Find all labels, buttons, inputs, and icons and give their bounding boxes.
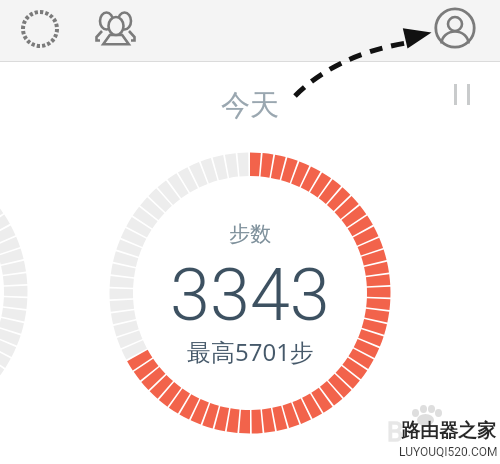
staticText: 步数 [229,221,271,247]
button[interactable] [18,7,62,51]
staticText: 3343 [170,253,330,337]
staticText: B [387,417,404,445]
button[interactable] [442,78,482,118]
staticText: 路由器之家 [401,419,496,443]
button[interactable] [433,6,477,50]
staticText: 最高5701步 [187,335,314,368]
button[interactable] [93,6,137,50]
staticText: 今天 [221,87,279,124]
staticText: LUYOUQI520.COM [399,445,498,459]
